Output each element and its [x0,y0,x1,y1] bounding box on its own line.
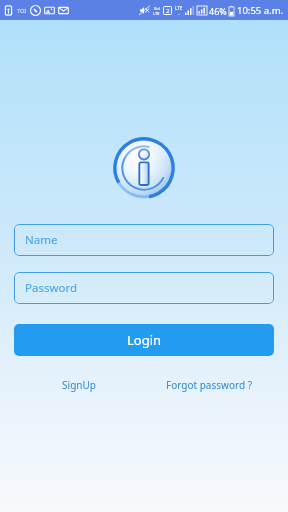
staticText: TOI [17,7,27,14]
button[interactable]: Name [14,224,274,256]
button[interactable]: SignUp [14,374,144,396]
staticText: SignUp [62,378,96,392]
staticText: LTE [153,11,160,16]
staticText: LTE [175,5,183,11]
staticText: 10:55 a.m. [237,4,284,17]
staticText: .. [178,11,180,16]
staticText: 46% [209,5,227,17]
button[interactable]: Forgot password ? [144,374,274,396]
button[interactable]: Password [14,272,274,304]
staticText: 2 [166,7,170,15]
staticText: Forgot password ? [166,378,252,392]
staticText: Password [25,280,78,296]
staticText: Login [127,331,162,349]
button[interactable]: Login [14,324,274,356]
staticText: Name [25,232,58,248]
staticText: Vol [154,6,160,11]
